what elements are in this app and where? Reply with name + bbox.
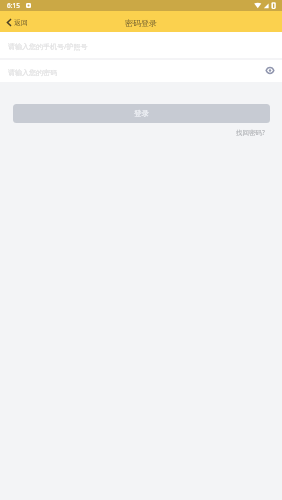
- button[interactable]: 请输入您的手机号/护照号: [0, 32, 282, 58]
- button[interactable]: 返回: [0, 14, 36, 29]
- button[interactable]: Show password: [260, 63, 282, 79]
- button[interactable]: 找回密码?: [226, 126, 282, 139]
- staticText: 登录: [134, 109, 149, 118]
- button[interactable]: 登录: [13, 104, 270, 123]
- staticText: 密码登录: [125, 18, 157, 28]
- staticText: 请输入您的手机号/护照号: [8, 42, 88, 52]
- staticText: 返回: [14, 18, 28, 27]
- staticText: 6:15: [7, 1, 20, 10]
- button[interactable]: 请输入您的密码: [0, 60, 282, 82]
- staticText: 找回密码?: [236, 128, 265, 137]
- staticText: 请输入您的密码: [8, 68, 57, 77]
